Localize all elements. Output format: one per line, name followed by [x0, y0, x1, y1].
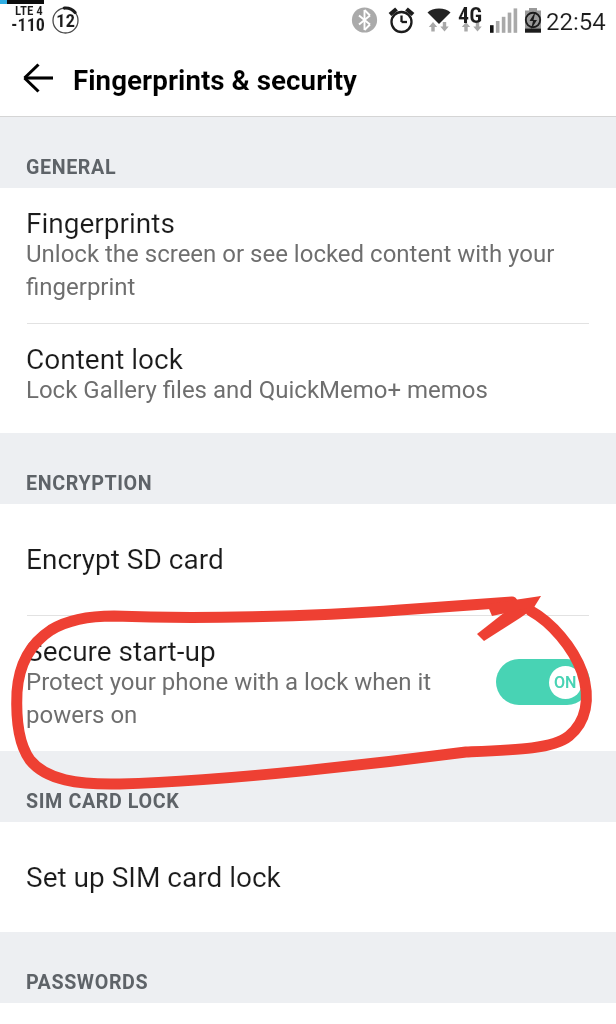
staticText: Lock Gallery files and QuickMemo+ memos [26, 376, 488, 404]
staticText: Content lock [26, 343, 183, 376]
staticText: Secure start-up [26, 635, 216, 668]
staticText: Fingerprints & security [73, 64, 358, 97]
staticText: SIM CARD LOCK [26, 790, 180, 813]
staticText: PASSWORDS [26, 971, 149, 994]
button[interactable]: Content lock [0, 324, 616, 433]
staticText: Unlock the screen or see locked content … [26, 240, 576, 301]
button[interactable]: Set up SIM card lock [0, 822, 616, 932]
staticText: Fingerprints [26, 207, 175, 240]
button[interactable]: Secure start-up on [496, 659, 590, 705]
staticText: 22:54 [546, 8, 606, 36]
staticText: -110 [11, 14, 45, 35]
staticText: 4G [458, 3, 483, 29]
staticText: Encrypt SD card [26, 543, 224, 576]
staticText: Set up SIM card lock [26, 861, 281, 894]
staticText: ENCRYPTION [26, 472, 153, 495]
button[interactable]: Fingerprints [0, 188, 616, 323]
button[interactable]: Encrypt SD card [0, 504, 616, 615]
staticText: Protect your phone with a lock when it p… [26, 668, 456, 729]
staticText: LTE 4 [15, 3, 43, 18]
staticText: 12 [56, 9, 76, 31]
staticText: ON [554, 673, 577, 692]
button[interactable]: Back [0, 46, 73, 117]
staticText: GENERAL [26, 156, 117, 179]
button[interactable]: Secure start-up [0, 616, 616, 751]
